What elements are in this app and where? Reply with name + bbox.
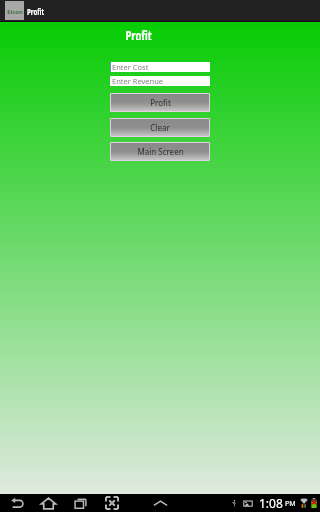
staticText: Profit xyxy=(125,26,153,40)
staticText: $icon xyxy=(7,8,23,16)
button[interactable]: App icon xyxy=(5,1,24,20)
button[interactable]: Main Screen xyxy=(111,143,209,160)
staticText: 1:08 xyxy=(259,495,283,511)
button[interactable]: Enter Cost xyxy=(110,62,210,72)
button[interactable]: Clear xyxy=(111,119,209,136)
button[interactable]: Enter Revenue xyxy=(110,76,210,86)
button[interactable]: Profit xyxy=(111,94,209,111)
button[interactable]: Home xyxy=(39,494,57,512)
staticText: Profit xyxy=(27,5,45,17)
button[interactable]: Show menu xyxy=(151,494,169,512)
button[interactable]: Screenshot xyxy=(103,494,121,512)
button[interactable]: Back xyxy=(8,494,26,512)
staticText: Profit xyxy=(150,97,171,108)
staticText: Enter Revenue xyxy=(112,76,164,86)
staticText: Clear xyxy=(150,122,170,133)
staticText: Enter Cost xyxy=(112,62,149,72)
staticText: PM xyxy=(285,499,296,509)
staticText: Main Screen xyxy=(137,146,184,157)
button[interactable]: Recent apps xyxy=(71,494,89,512)
